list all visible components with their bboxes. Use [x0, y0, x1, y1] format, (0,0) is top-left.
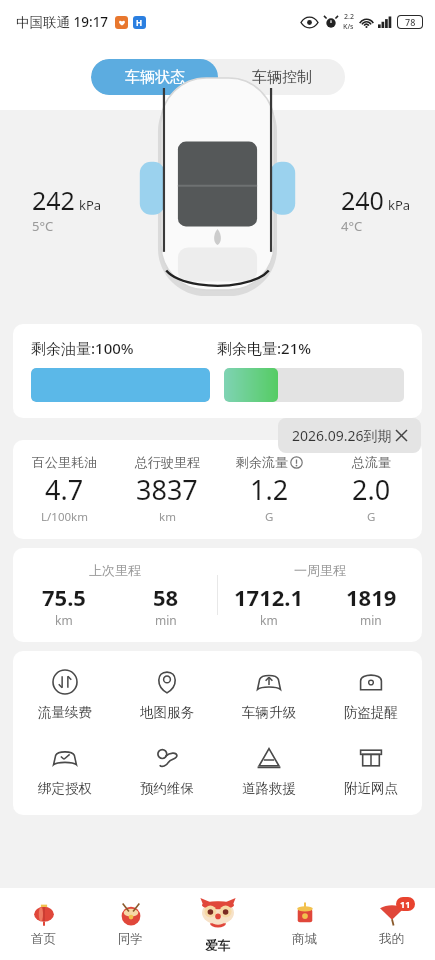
- staticText: 一周里程: [294, 562, 346, 578]
- button[interactable]: 附近网点: [320, 745, 422, 797]
- staticText: 11: [400, 898, 411, 910]
- button[interactable]: 道路救援: [218, 745, 320, 797]
- staticText: 同学: [118, 931, 143, 947]
- staticText: 1819: [346, 582, 397, 612]
- staticText: 流量续费: [38, 704, 92, 721]
- staticText: 道路救援: [242, 780, 296, 797]
- button[interactable]: 上次里程: [13, 562, 217, 628]
- button[interactable]: 流量续费: [13, 669, 116, 721]
- staticText: 4.7: [45, 471, 84, 508]
- staticText: kPa: [79, 196, 102, 214]
- staticText: 剩余电量:21%: [217, 338, 404, 358]
- staticText: 首页: [31, 931, 56, 947]
- staticText: 中国联通 19:17: [16, 13, 109, 31]
- staticText: 58: [153, 582, 179, 612]
- staticText: min: [155, 612, 177, 628]
- staticText: 总行驶里程: [135, 454, 200, 470]
- button[interactable]: 11: [348, 888, 435, 960]
- staticText: 防盗提醒: [344, 704, 398, 721]
- staticText: G: [367, 509, 376, 525]
- staticText: 242: [32, 183, 75, 217]
- staticText: 我的: [379, 931, 404, 947]
- staticText: km: [159, 509, 176, 525]
- staticText: min: [360, 612, 382, 628]
- staticText: 剩余流量: [236, 454, 288, 470]
- button[interactable]: 防盗提醒: [320, 669, 422, 721]
- button[interactable]: 首页: [0, 888, 87, 960]
- staticText: 附近网点: [344, 780, 398, 797]
- button[interactable]: 商城: [261, 888, 348, 960]
- staticText: 车辆控制: [252, 68, 312, 87]
- staticText: 5°C: [32, 217, 54, 235]
- staticText: 百公里耗油: [32, 454, 97, 470]
- button[interactable]: 总流量: [320, 454, 422, 525]
- other: 关闭: [396, 430, 407, 441]
- button[interactable]: 百公里耗油: [13, 454, 116, 525]
- staticText: 2.2: [344, 12, 354, 22]
- staticText: 3837: [136, 471, 198, 508]
- button[interactable]: 预约维保: [116, 745, 218, 797]
- button[interactable]: 车辆升级: [218, 669, 320, 721]
- button[interactable]: 车辆状态: [91, 59, 218, 95]
- button[interactable]: 爱车: [174, 888, 261, 960]
- staticText: H: [136, 17, 143, 28]
- staticText: 240: [341, 183, 384, 217]
- button[interactable]: 一周里程: [218, 562, 422, 628]
- staticText: 商城: [292, 931, 317, 947]
- staticText: 车辆状态: [125, 68, 185, 87]
- staticText: 剩余油量:100%: [31, 338, 217, 358]
- staticText: 1712.1: [234, 582, 304, 612]
- staticText: 75.5: [42, 582, 86, 612]
- staticText: G: [265, 509, 274, 525]
- staticText: 预约维保: [140, 780, 194, 797]
- button[interactable]: 地图服务: [116, 669, 218, 721]
- staticText: km: [55, 612, 73, 628]
- button[interactable]: 绑定授权: [13, 745, 116, 797]
- staticText: km: [260, 612, 278, 628]
- staticText: 4°C: [341, 217, 363, 235]
- staticText: 总流量: [352, 454, 391, 470]
- staticText: 上次里程: [89, 562, 141, 578]
- staticText: 地图服务: [140, 704, 194, 721]
- staticText: 2026.09.26到期: [292, 426, 392, 445]
- staticText: L/100km: [41, 509, 88, 525]
- staticText: K/s: [343, 22, 354, 32]
- staticText: 1.2: [250, 471, 289, 508]
- staticText: 78: [405, 16, 416, 28]
- button[interactable]: 2026.09.26到期: [278, 418, 421, 453]
- button[interactable]: 车辆控制: [218, 59, 345, 95]
- button[interactable]: 总行驶里程: [116, 454, 218, 525]
- staticText: kPa: [388, 196, 411, 214]
- staticText: 绑定授权: [38, 780, 92, 797]
- button[interactable]: 剩余流量: [218, 454, 320, 525]
- button[interactable]: 同学: [87, 888, 174, 960]
- staticText: 2.0: [352, 471, 391, 508]
- staticText: 车辆升级: [242, 704, 296, 721]
- staticText: 爱车: [205, 938, 230, 954]
